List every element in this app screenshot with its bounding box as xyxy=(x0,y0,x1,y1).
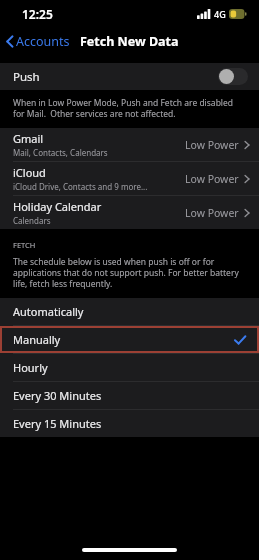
staticText: Low Power xyxy=(185,206,239,220)
button[interactable]: Manually xyxy=(0,326,259,353)
button[interactable]: Hourly xyxy=(0,354,259,381)
staticText: The schedule below is used when push is … xyxy=(13,256,246,289)
staticText: Every 15 Minutes xyxy=(13,416,246,431)
staticText: Hourly xyxy=(13,360,246,375)
staticText: 4G xyxy=(214,8,226,20)
staticText: 12:25 xyxy=(22,6,53,22)
button[interactable]: Holiday Calendar xyxy=(0,196,259,229)
staticText: Push xyxy=(13,69,40,85)
staticText: Holiday Calendar xyxy=(13,199,102,214)
staticText: FETCH xyxy=(13,240,36,250)
button[interactable]: Every 30 Minutes xyxy=(0,382,259,409)
staticText: When in Low Power Mode, Push and Fetch a… xyxy=(13,97,243,119)
button[interactable]: Gmail xyxy=(0,128,259,161)
staticText: Calendars xyxy=(13,215,51,226)
button[interactable]: Every 15 Minutes xyxy=(0,410,259,437)
button[interactable]: Automatically xyxy=(0,298,259,325)
staticText: Automatically xyxy=(13,304,246,319)
staticText: Manually xyxy=(13,332,234,347)
button[interactable]: Accounts xyxy=(0,30,78,53)
button[interactable]: iCloud xyxy=(0,162,259,195)
staticText: iCloud Drive, Contacts and 9 more... xyxy=(13,181,148,192)
button[interactable]: Push xyxy=(0,63,259,90)
staticText: Every 30 Minutes xyxy=(13,388,246,403)
staticText: Low Power xyxy=(185,172,239,186)
button[interactable]: Push toggle xyxy=(218,68,248,85)
staticText: Accounts xyxy=(16,33,70,50)
staticText: Low Power xyxy=(185,138,239,152)
staticText: Fetch New Data xyxy=(80,33,179,50)
staticText: Mail, Contacts, Calendars xyxy=(13,147,108,158)
staticText: Gmail xyxy=(13,131,44,146)
staticText: iCloud xyxy=(13,165,46,180)
